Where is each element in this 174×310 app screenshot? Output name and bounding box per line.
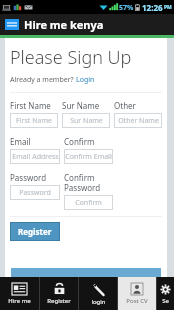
staticText: 57%	[119, 3, 134, 13]
staticText: Email Address	[12, 152, 59, 162]
button[interactable]: Se	[157, 277, 174, 310]
staticText: Please Sign Up	[10, 45, 132, 70]
staticText: Login	[76, 75, 95, 85]
staticText: Email	[10, 136, 31, 147]
staticText: Post CV	[126, 297, 148, 305]
staticText: Other Names	[114, 100, 162, 111]
staticText: 12:26	[142, 2, 163, 13]
staticText: First Name	[10, 100, 51, 111]
staticText: Confirm Email	[64, 136, 113, 147]
staticText: PM	[164, 4, 172, 11]
button[interactable]: Register	[10, 222, 60, 241]
button[interactable]: Register	[40, 277, 78, 310]
staticText: Register	[47, 297, 71, 305]
staticText: Other Name	[118, 116, 159, 126]
button[interactable]: Hire me kenya	[5, 17, 104, 32]
button[interactable]: login	[79, 277, 117, 310]
staticText: Hire me kenya	[24, 17, 104, 32]
staticText: Password	[19, 188, 51, 198]
staticText: Sur Name	[62, 100, 100, 111]
button[interactable]: Post CV	[118, 277, 156, 310]
button[interactable]: Confirm Email	[64, 149, 113, 164]
button[interactable]: Hire me kenya	[0, 277, 39, 310]
button[interactable]: Login	[76, 75, 95, 85]
staticText: Sur Name	[70, 116, 103, 126]
button[interactable]: Password	[10, 185, 60, 200]
staticText: Register	[18, 226, 52, 237]
staticText: Password	[10, 172, 47, 183]
staticText: Hire me kenya	[0, 297, 39, 305]
button[interactable]: Email Address	[10, 149, 60, 164]
staticText: Confirm Password	[64, 198, 113, 208]
staticText: Se	[162, 297, 169, 305]
staticText: Already a member?	[10, 75, 76, 85]
staticText: First Name	[16, 116, 52, 126]
button[interactable]: Other Name	[114, 113, 162, 128]
button[interactable]: Sur Name	[62, 113, 110, 128]
button[interactable]: Confirm Password	[64, 195, 113, 210]
staticText: login	[91, 298, 106, 306]
staticText: Confirm Password	[64, 172, 101, 193]
staticText: Confirm Email	[65, 152, 112, 162]
button[interactable]: First Name	[10, 113, 58, 128]
